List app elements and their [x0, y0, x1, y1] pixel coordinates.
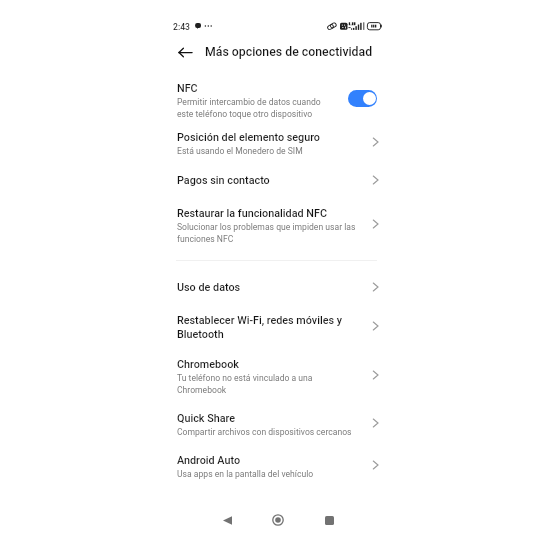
staticText: Android Auto — [177, 453, 241, 467]
button[interactable]: Recent apps — [317, 508, 341, 532]
staticText: Está usando el Monedero de SIM — [177, 145, 303, 157]
staticText: 2:43 — [173, 22, 190, 32]
button[interactable] — [177, 127, 380, 176]
staticText: Restablecer Wi-Fi, redes móviles y Bluet… — [177, 313, 343, 341]
button[interactable]: Home — [266, 508, 290, 532]
button[interactable] — [177, 354, 380, 407]
staticText: Pagos sin contacto — [177, 173, 270, 187]
button[interactable] — [177, 310, 380, 354]
button[interactable] — [177, 127, 380, 170]
button[interactable] — [177, 203, 380, 253]
button[interactable] — [177, 449, 380, 491]
button[interactable] — [177, 170, 380, 203]
staticText: Posición del elemento seguro — [177, 130, 320, 144]
button[interactable] — [177, 407, 380, 449]
button[interactable] — [177, 277, 380, 310]
button[interactable]: Back — [174, 42, 196, 64]
staticText: NFC — [177, 81, 198, 95]
staticText: Tu teléfono no está vinculado a una Chro… — [177, 372, 313, 396]
staticText: Chromebook — [177, 357, 239, 371]
staticText: Restaurar la funcionalidad NFC — [177, 206, 327, 220]
staticText: Uso de datos — [177, 280, 241, 294]
staticText: Más opciones de conectividad — [205, 45, 373, 59]
staticText: Solucionar los problemas que impiden usa… — [177, 221, 356, 245]
staticText: Usa apps en la pantalla del vehículo — [177, 468, 314, 480]
button[interactable]: NFC switch — [348, 90, 377, 107]
button[interactable]: Back — [215, 508, 239, 532]
staticText: Quick Share — [177, 411, 236, 425]
staticText: Compartir archivos con dispositivos cerc… — [177, 426, 352, 438]
staticText: Permitir intercambio de datos cuando est… — [177, 96, 321, 120]
